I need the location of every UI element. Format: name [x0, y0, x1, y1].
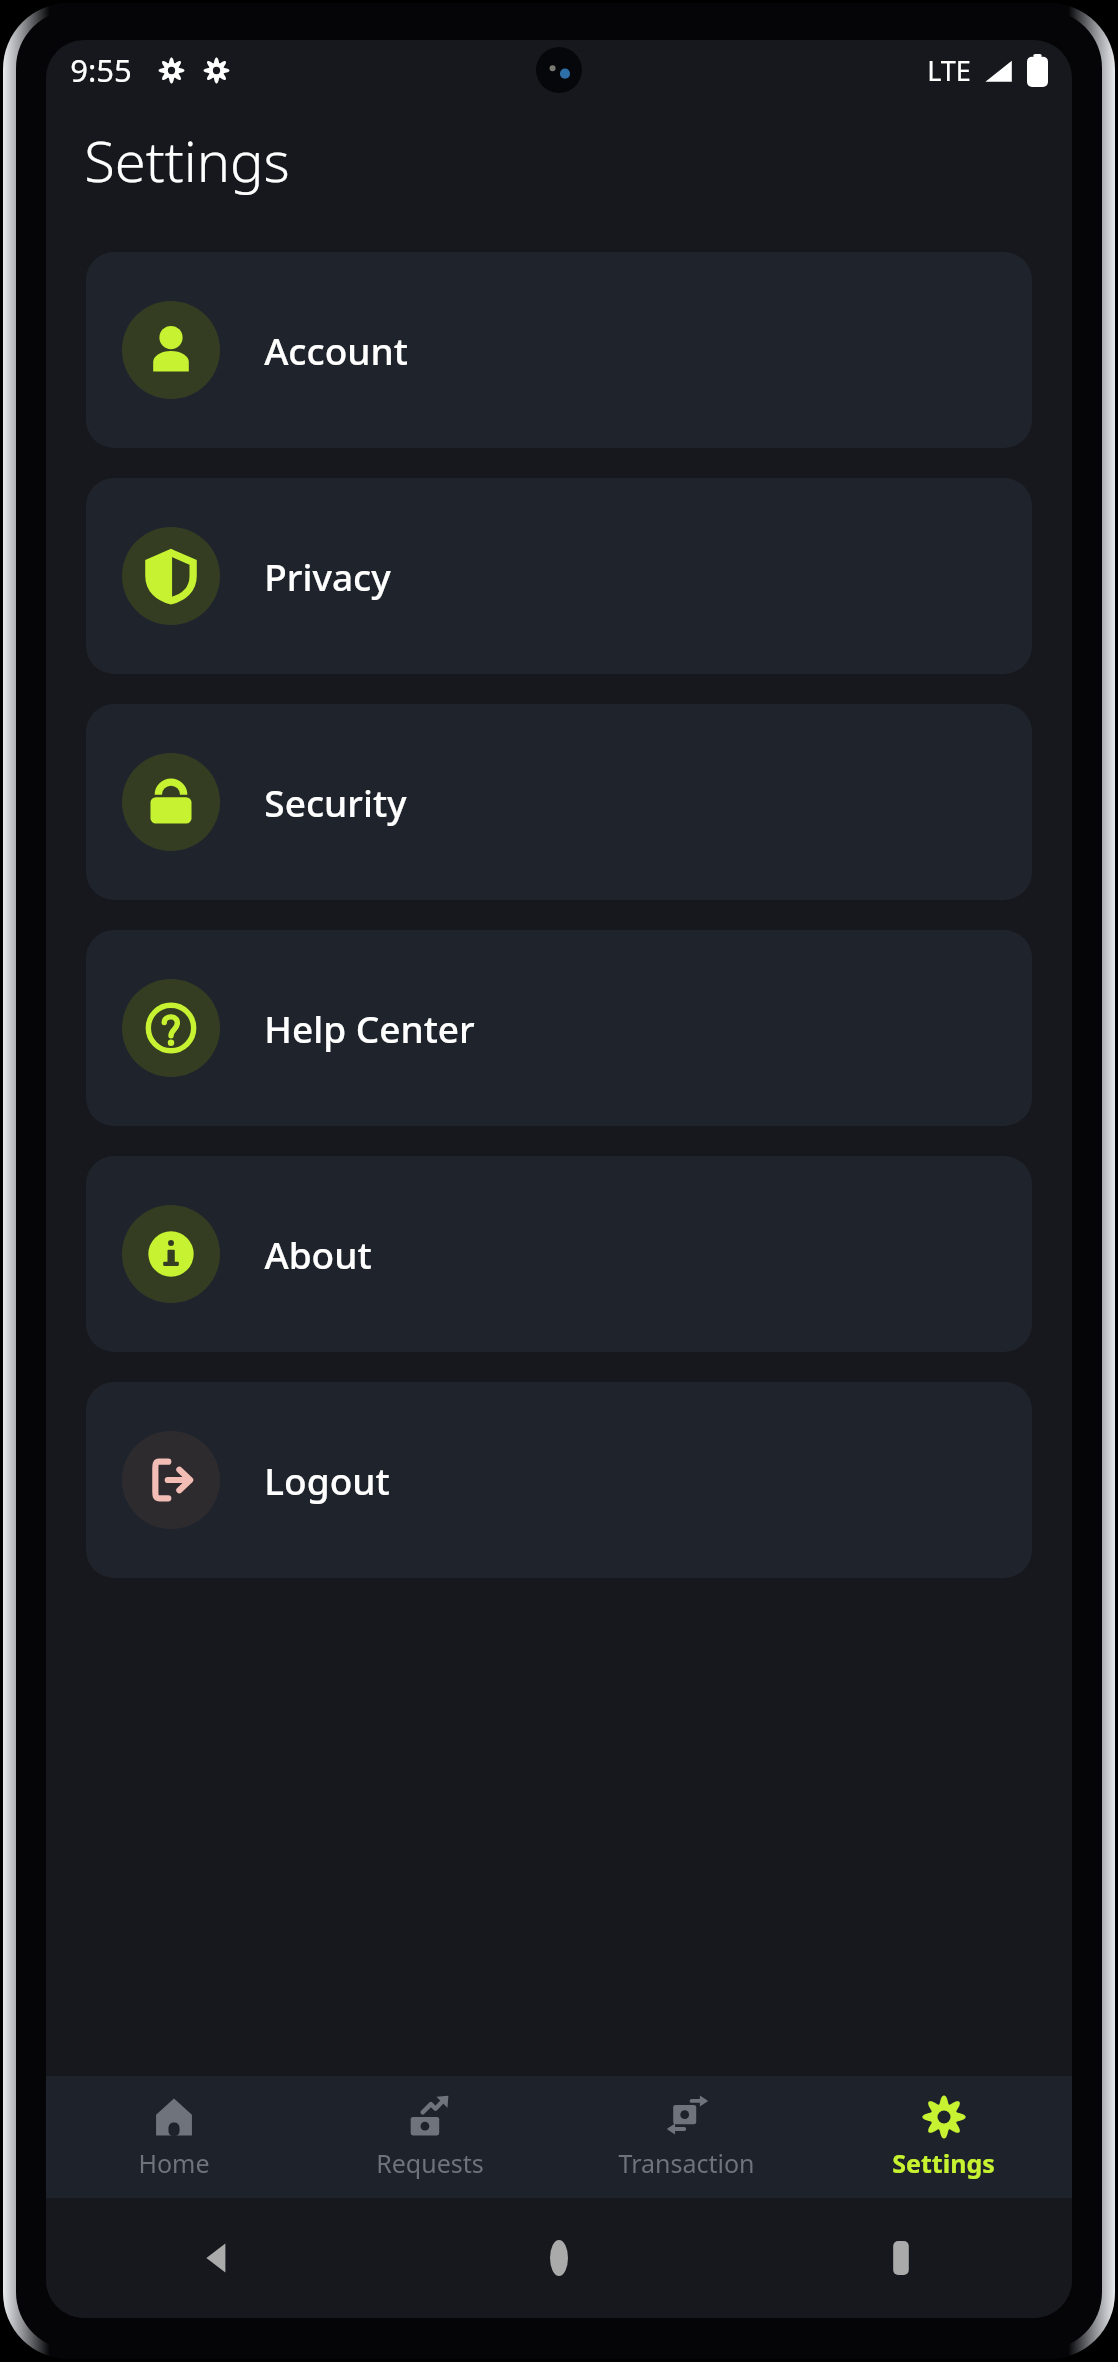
button[interactable]: Transaction	[558, 2076, 815, 2198]
staticText: Home	[138, 2146, 210, 2180]
staticText: Settings	[84, 122, 290, 198]
staticText: Transaction	[618, 2146, 755, 2180]
button[interactable]: Account	[86, 252, 1032, 448]
staticText: Help Center	[264, 1003, 475, 1053]
staticText: Logout	[264, 1455, 390, 1505]
button[interactable]: Security	[86, 704, 1032, 900]
button[interactable]: Help Center	[86, 930, 1032, 1126]
staticText: Requests	[376, 2146, 484, 2180]
staticText: About	[264, 1229, 372, 1279]
button[interactable]: Logout	[86, 1382, 1032, 1578]
button[interactable]: Settings	[815, 2076, 1072, 2198]
staticText: LTE	[927, 52, 971, 89]
button[interactable]: Privacy	[86, 478, 1032, 674]
button[interactable]: Recents	[730, 2198, 1072, 2318]
button[interactable]: About	[86, 1156, 1032, 1352]
staticText: Security	[264, 777, 407, 827]
staticText: Account	[264, 325, 408, 375]
button[interactable]: Home	[388, 2198, 730, 2318]
staticText: 9:55	[70, 49, 132, 91]
staticText: Settings	[892, 2146, 995, 2180]
button[interactable]: Requests	[302, 2076, 558, 2198]
button[interactable]: Home	[46, 2076, 302, 2198]
staticText: Privacy	[264, 551, 391, 601]
button[interactable]: Back	[46, 2198, 388, 2318]
